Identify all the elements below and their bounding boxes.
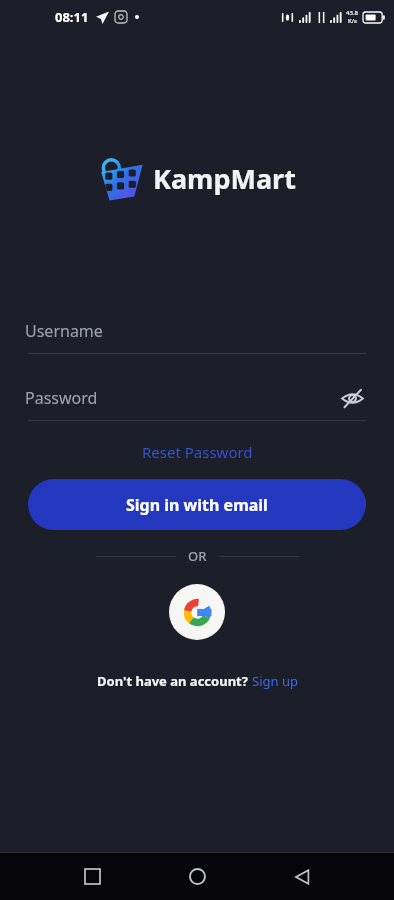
button[interactable]: Don't have an account?	[89, 669, 306, 693]
button[interactable]: Username	[0, 309, 394, 353]
staticText: Password	[25, 387, 98, 409]
staticText: Don't have an account?	[97, 672, 252, 690]
staticText: K/s	[348, 17, 357, 25]
button[interactable]: Home	[173, 853, 221, 900]
staticText: 08:11	[55, 8, 89, 26]
staticText: Sign up	[252, 672, 298, 690]
button[interactable]: Reset Password	[134, 439, 261, 465]
button[interactable]: Recent apps	[68, 853, 116, 900]
staticText: Sign in with email	[126, 494, 268, 516]
staticText: 43.8	[346, 9, 358, 17]
staticText: OR	[188, 547, 207, 565]
button[interactable]: Show password	[335, 381, 369, 415]
button[interactable]: Back	[278, 853, 326, 900]
button[interactable]: Sign in with email	[28, 479, 366, 530]
staticText: Username	[25, 320, 103, 342]
button[interactable]: Password	[0, 376, 394, 420]
button[interactable]: Sign in with Google	[169, 584, 225, 640]
staticText: KampMart	[153, 160, 296, 197]
staticText: Reset Password	[142, 442, 253, 462]
